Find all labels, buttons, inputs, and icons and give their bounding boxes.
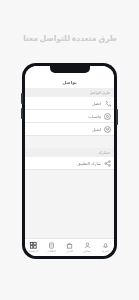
staticText: شارك التطبيق: [77, 161, 101, 166]
button[interactable]: الرئيسية: [25, 238, 42, 256]
staticText: الرئيسية: [29, 250, 38, 253]
button[interactable]: المتجر: [60, 238, 78, 256]
staticText: مشاركة: [98, 151, 110, 155]
button[interactable]: الطلبات: [42, 238, 60, 256]
staticText: حسابي: [83, 250, 91, 253]
staticText: المزيد: [102, 250, 109, 253]
staticText: واتساب: [88, 114, 101, 119]
staticText: المتجر: [66, 250, 73, 253]
button[interactable]: عنوان الصفحة: [62, 80, 77, 85]
staticText: طرق متعددة للتواصل معنا: [23, 33, 117, 43]
staticText: ايميل: [92, 127, 101, 132]
staticText: اتصل: [92, 101, 101, 106]
button[interactable]: ايميل: [25, 123, 114, 135]
button[interactable]: واتساب: [25, 110, 114, 122]
staticText: تواصل: [62, 80, 77, 85]
button[interactable]: شارك التطبيق: [25, 157, 114, 169]
button[interactable]: المزيد: [96, 238, 114, 256]
button[interactable]: اتصل: [25, 97, 114, 109]
button[interactable]: حسابي: [78, 238, 96, 256]
staticText: الطلبات: [47, 250, 56, 253]
staticText: طرق التواصل: [89, 90, 110, 95]
